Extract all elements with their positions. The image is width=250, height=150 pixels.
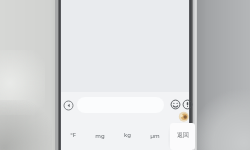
button[interactable] — [182, 99, 193, 110]
staticText: °F — [70, 131, 76, 139]
button[interactable] — [63, 100, 74, 111]
button[interactable] — [170, 99, 181, 110]
button[interactable]: 返回 — [170, 123, 195, 150]
button[interactable]: mg — [90, 131, 110, 141]
button[interactable]: µm — [145, 131, 165, 141]
staticText: mg — [95, 132, 105, 140]
staticText: kg — [124, 131, 131, 139]
button[interactable]: °F — [63, 130, 83, 140]
staticText: 返回 — [177, 131, 189, 139]
staticText: µm — [150, 132, 160, 140]
button[interactable]: kg — [117, 130, 137, 140]
